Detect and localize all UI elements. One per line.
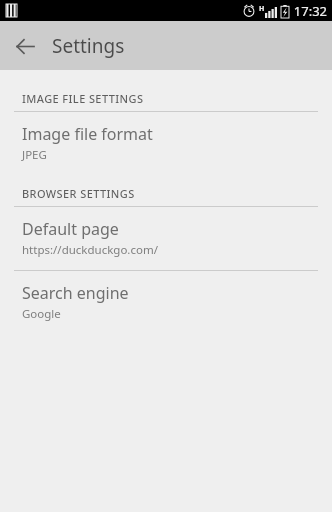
button[interactable]: Back <box>8 29 42 63</box>
button[interactable]: Default page <box>0 207 332 270</box>
staticText: Google <box>22 306 61 322</box>
staticText: H <box>259 4 265 14</box>
staticText: Image file format <box>22 123 153 145</box>
button[interactable]: Search engine <box>0 271 332 334</box>
staticText: 17:32 <box>293 2 327 20</box>
staticText: Settings <box>52 33 125 59</box>
staticText: Search engine <box>22 282 129 304</box>
staticText: BROWSER SETTINGS <box>22 186 135 201</box>
staticText: JPEG <box>22 147 47 163</box>
staticText: Default page <box>22 218 119 240</box>
staticText: https://duckduckgo.com/ <box>22 242 158 258</box>
staticText: IMAGE FILE SETTINGS <box>22 91 144 106</box>
button[interactable]: Image file format <box>0 112 332 175</box>
